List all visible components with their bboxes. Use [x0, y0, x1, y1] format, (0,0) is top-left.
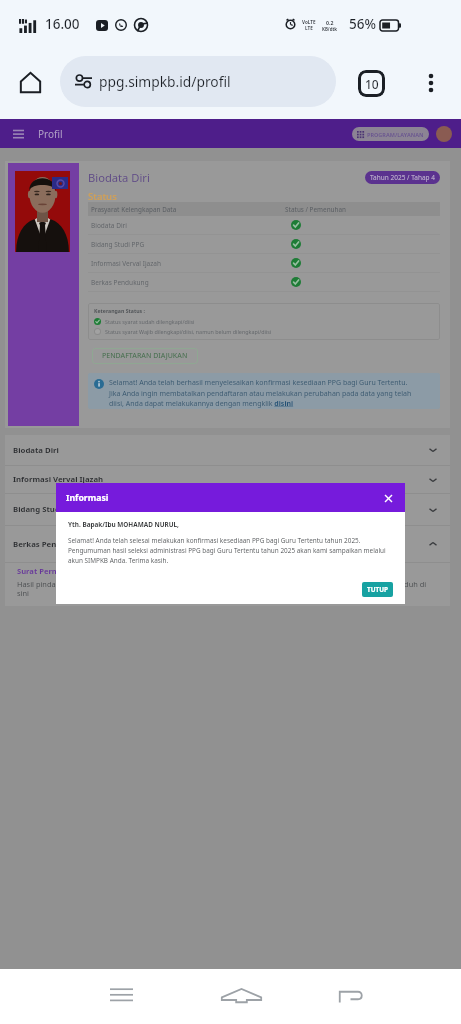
staticText: VoLTE: [302, 19, 316, 25]
staticText: Keterangan Status :: [94, 307, 145, 314]
staticText: Informasi Verval Ijazah: [91, 259, 161, 268]
staticText: Selamat! Anda telah berhasil menyelesaik…: [109, 378, 416, 408]
button[interactable]: Recent apps: [99, 978, 143, 1012]
staticText: Biodata Diri: [91, 221, 127, 230]
button[interactable]: Informasi Verval Ijazah: [5, 466, 450, 493]
button[interactable]: Home: [14, 66, 46, 98]
staticText: Status syarat sudah dilengkapi/diisi: [105, 318, 195, 325]
button[interactable]: Biodata Diri: [5, 435, 450, 465]
button[interactable]: ppg.simpkb.id/profil: [60, 56, 336, 107]
staticText: Profil: [38, 127, 63, 141]
button[interactable]: Back: [328, 978, 372, 1012]
staticText: PROGRAM/LAYANAN: [367, 131, 424, 138]
staticText: Berkas Pendukung: [91, 278, 149, 287]
staticText: Informasi Verval Ijazah: [13, 474, 104, 485]
staticText: 56%: [349, 15, 376, 33]
staticText: TUTUP: [367, 585, 389, 594]
staticText: Hasil pindai Surat Pernyataan yang telah…: [17, 579, 436, 598]
button[interactable]: PROGRAM/LAYANAN: [352, 127, 429, 141]
button[interactable]: Bidang Studi PPG: [5, 494, 450, 525]
staticText: 0.2: [326, 19, 334, 26]
button[interactable]: Tahun 2025 / Tahap 4: [365, 171, 440, 184]
staticText: Informasi: [66, 492, 109, 504]
button[interactable]: Home: [210, 978, 273, 1012]
button[interactable]: Close: [381, 491, 395, 505]
staticText: Biodata Diri: [88, 170, 150, 185]
button[interactable]: [436, 126, 452, 142]
staticText: 16.00: [45, 15, 80, 33]
staticText: Selamat! Anda telah selesai melakukan ko…: [68, 536, 395, 565]
staticText: PENDAFTARAN DIAJUKAN: [102, 351, 188, 361]
staticText: Bidang Studi PPG: [91, 240, 145, 249]
staticText: Status: [88, 190, 117, 203]
staticText: Yth. Bapak/Ibu MOHAMAD NURUL,: [68, 520, 179, 529]
button[interactable]: TUTUP: [362, 582, 393, 597]
staticText: Berkas Pendukung: [13, 539, 87, 550]
staticText: Surat Pernyataan: [17, 566, 83, 576]
button[interactable]: Berkas Pendukung: [5, 526, 450, 562]
staticText: Biodata Diri: [13, 445, 59, 456]
button[interactable]: Tabs: [352, 64, 390, 102]
staticText: LTE: [305, 25, 313, 31]
button[interactable]: PENDAFTARAN DIAJUKAN: [92, 348, 198, 364]
staticText: Status syarat Wajib dilengkapi/diisi, na…: [105, 328, 272, 335]
button[interactable]: Menu: [9, 125, 27, 143]
staticText: KB/dtk: [322, 26, 338, 32]
staticText: ppg.simpkb.id/profil: [99, 72, 231, 91]
staticText: Bidang Studi PPG: [13, 504, 80, 515]
staticText: Status / Pemenuhan: [285, 205, 347, 214]
staticText: 10: [365, 76, 379, 92]
staticText: Tahun 2025 / Tahap 4: [370, 173, 435, 182]
button[interactable]: More options: [412, 64, 450, 102]
staticText: Prasyarat Kelengkapan Data: [91, 205, 177, 214]
